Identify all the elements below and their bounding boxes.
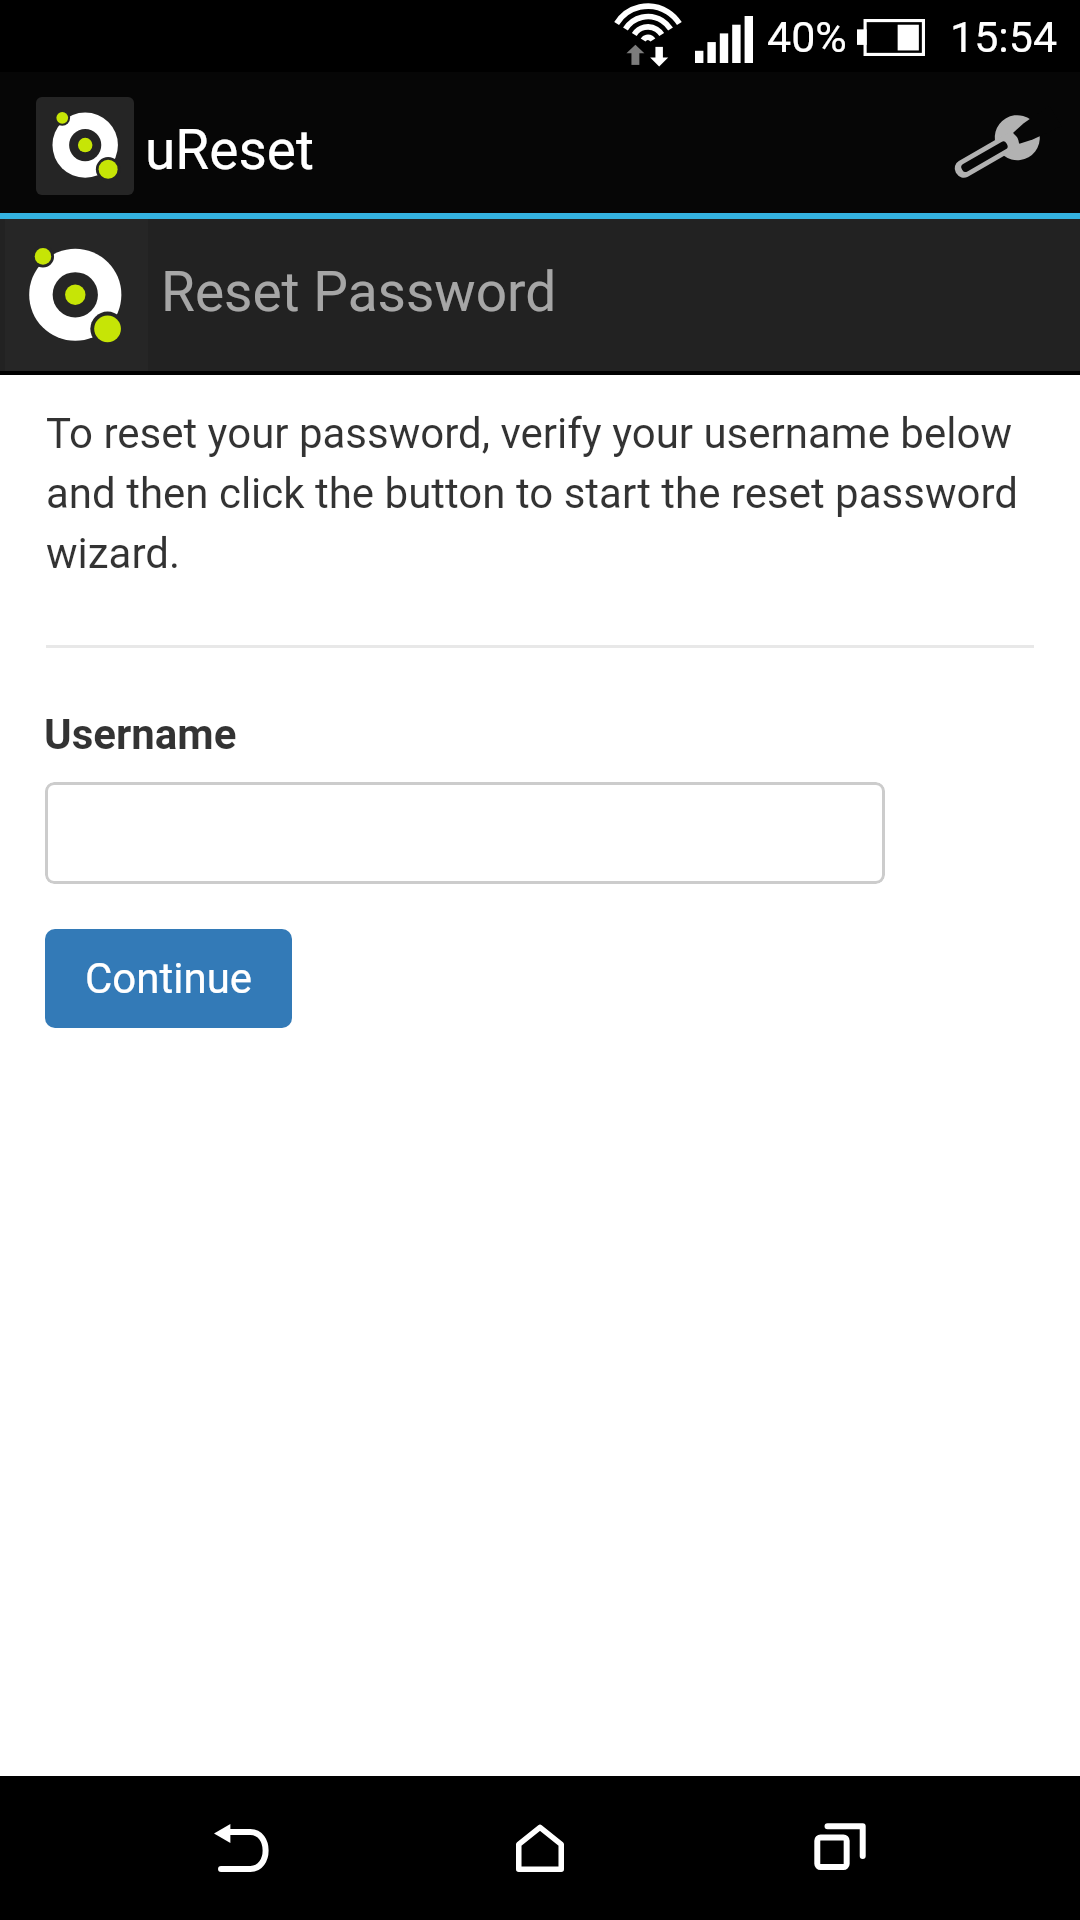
button[interactable]: Back <box>180 1776 300 1920</box>
staticText: 40% <box>767 12 847 62</box>
staticText: uReset <box>145 118 314 182</box>
button[interactable]: Username input <box>45 782 885 884</box>
button[interactable]: Settings <box>926 72 1080 213</box>
button[interactable]: Recent apps <box>780 1776 900 1920</box>
staticText: 15:54 <box>950 12 1058 62</box>
button[interactable]: Continue <box>45 929 292 1028</box>
staticText: Continue <box>85 954 253 1003</box>
staticText: Reset Password <box>161 260 557 324</box>
button[interactable]: Home <box>480 1776 600 1920</box>
staticText: Username <box>44 710 237 759</box>
staticText: To reset your password, verify your user… <box>46 400 1036 580</box>
